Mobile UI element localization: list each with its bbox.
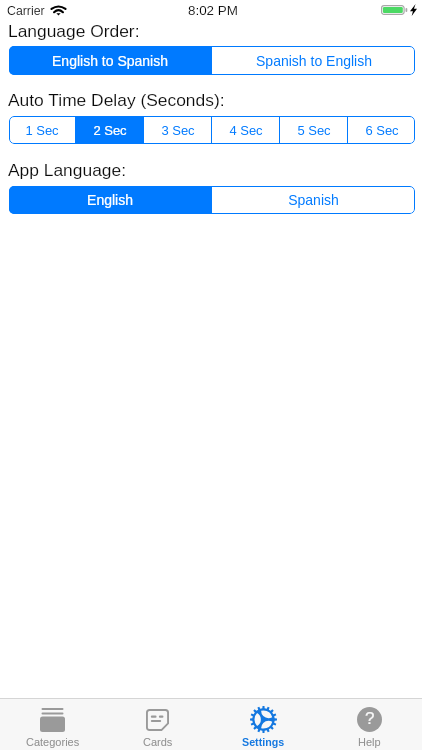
staticText: English <box>87 192 133 208</box>
button[interactable]: English to Spanish <box>9 46 211 75</box>
staticText: Auto Time Delay (Seconds): <box>8 90 225 109</box>
button[interactable]: 2 Sec <box>76 116 143 144</box>
staticText: App Language: <box>8 160 126 179</box>
staticText: 6 Sec <box>365 123 399 138</box>
button[interactable]: 5 Sec <box>280 116 347 144</box>
button[interactable]: Settings <box>210 699 316 750</box>
staticText: 4 Sec <box>229 123 263 138</box>
staticText: Help <box>358 736 381 748</box>
staticText: Language Order: <box>8 21 140 40</box>
button[interactable]: Categories <box>0 699 105 750</box>
staticText: Cards <box>143 736 173 748</box>
button[interactable]: 6 Sec <box>348 116 415 144</box>
staticText: Spanish to English <box>256 53 372 69</box>
staticText: Spanish <box>288 192 339 208</box>
staticText: ? <box>365 709 375 728</box>
staticText: 1 Sec <box>25 123 59 138</box>
button[interactable]: 4 Sec <box>212 116 279 144</box>
button[interactable]: Spanish <box>212 186 415 214</box>
button[interactable]: 3 Sec <box>144 116 211 144</box>
staticText: 3 Sec <box>161 123 195 138</box>
staticText: Categories <box>26 736 80 748</box>
staticText: English to Spanish <box>52 53 168 69</box>
staticText: 2 Sec <box>93 123 127 138</box>
button[interactable]: Spanish to English <box>212 46 415 75</box>
button[interactable]: Cards <box>105 699 210 750</box>
staticText: 8:02 PM <box>188 3 238 18</box>
staticText: Settings <box>242 736 285 748</box>
button[interactable]: ? <box>316 699 422 750</box>
button[interactable]: English <box>9 186 211 214</box>
staticText: 5 Sec <box>297 123 331 138</box>
staticText: Carrier <box>7 4 45 18</box>
button[interactable]: 1 Sec <box>9 116 75 144</box>
